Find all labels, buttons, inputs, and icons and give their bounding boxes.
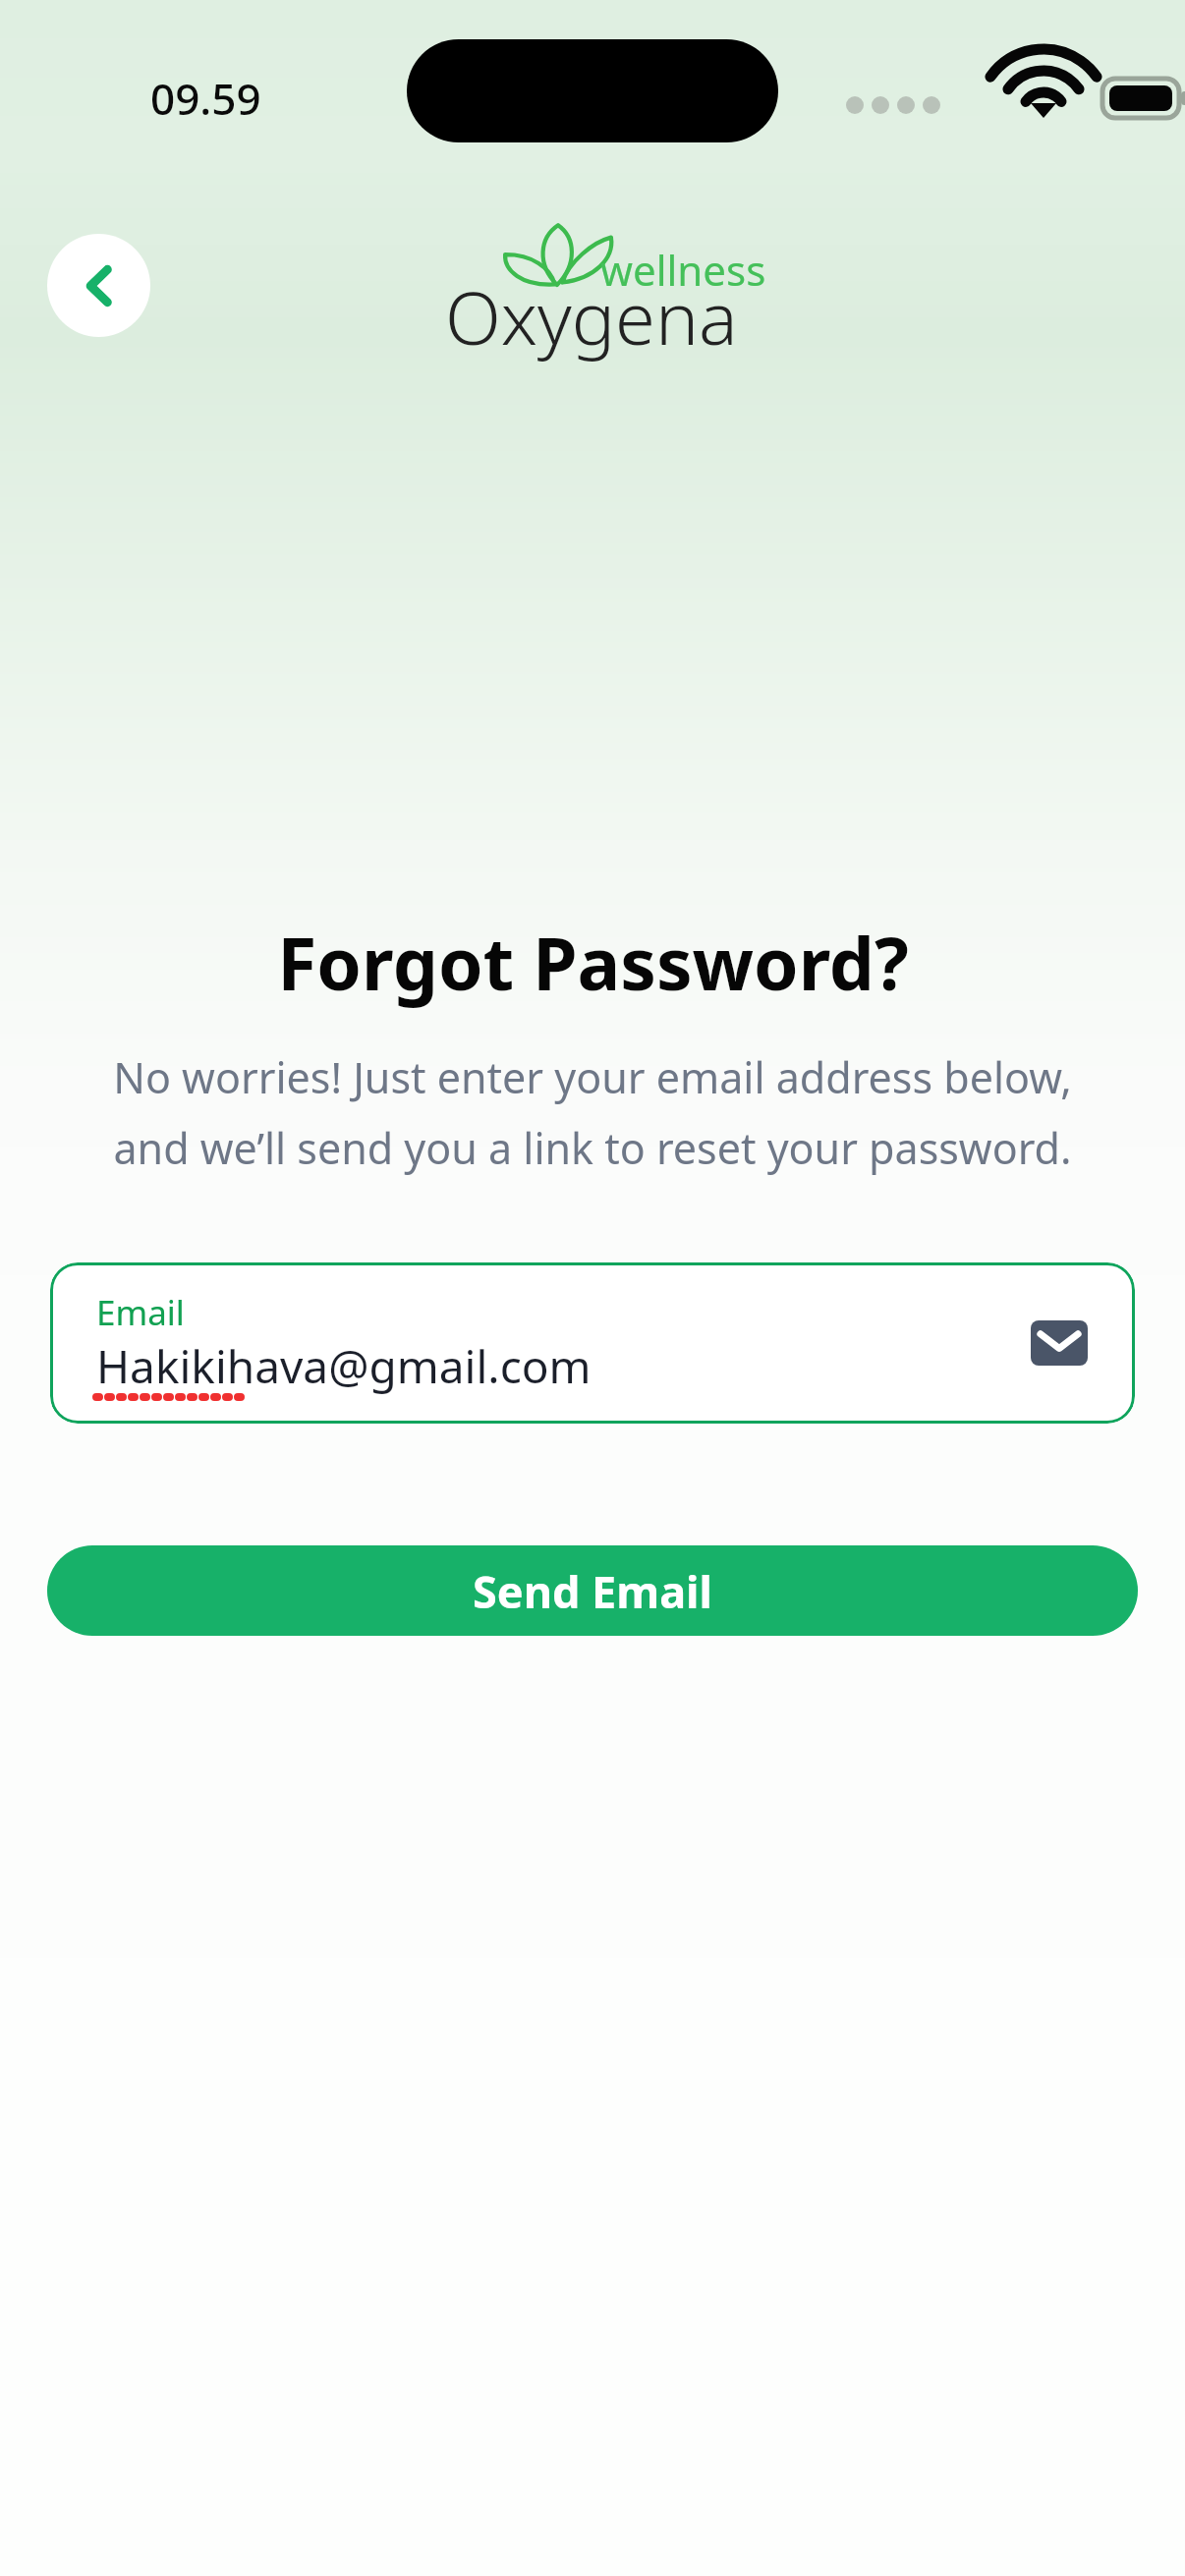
- staticText: Email: [96, 1289, 185, 1336]
- staticText: No worries! Just enter your email addres…: [81, 1048, 1104, 1176]
- staticText: Oxygena: [445, 267, 738, 366]
- button[interactable]: Email: [50, 1262, 1135, 1424]
- staticText: 09.59: [150, 69, 261, 128]
- staticText: wellness: [600, 242, 766, 298]
- staticText: Forgot Password?: [277, 914, 909, 1011]
- staticText: Send Email: [473, 1561, 712, 1621]
- staticText: Hakikihava@gmail.com: [96, 1335, 592, 1397]
- button[interactable]: Back: [47, 234, 150, 337]
- other: Email: [1031, 1320, 1088, 1366]
- button[interactable]: Send Email: [47, 1545, 1138, 1636]
